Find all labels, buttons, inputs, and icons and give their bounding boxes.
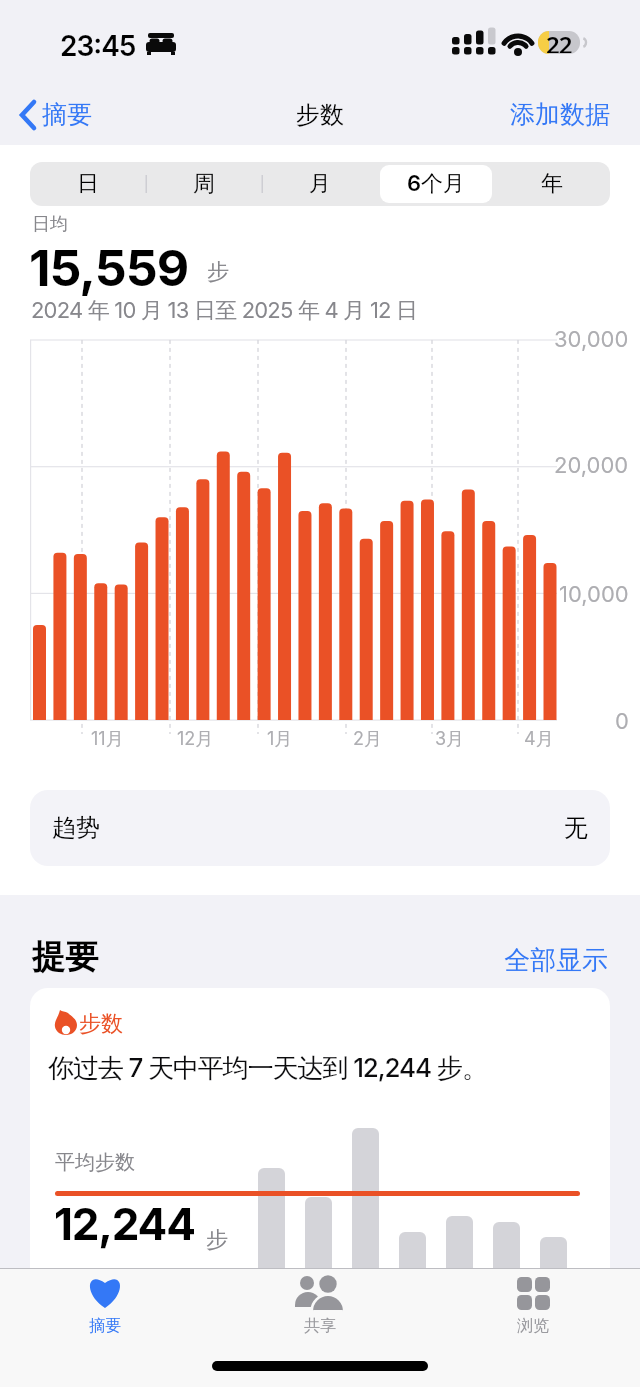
staticText: 11月 [91, 728, 124, 751]
staticText: 共享 [304, 1316, 336, 1336]
button[interactable]: 日 [30, 162, 146, 206]
staticText: 步数 [296, 100, 344, 130]
staticText: 20,000 [554, 452, 629, 479]
staticText: 15,559 [29, 238, 189, 298]
staticText: 平均步数 [55, 1150, 135, 1175]
button[interactable]: 6个月 [378, 162, 494, 206]
staticText: 1月 [267, 728, 293, 751]
staticText: 无 [564, 813, 588, 843]
staticText: 摘要 [89, 1316, 121, 1336]
staticText: 2月 [353, 728, 382, 751]
staticText: 步 [207, 258, 229, 286]
button[interactable]: 周 [146, 162, 262, 206]
staticText: 添加数据 [510, 99, 610, 130]
staticText: 周 [193, 170, 215, 198]
staticText: 10,000 [559, 581, 629, 608]
staticText: 12,244 [54, 1197, 195, 1250]
staticText: 提要 [32, 936, 98, 978]
staticText: 摘要 [42, 99, 92, 130]
staticText: 步数 [79, 1010, 123, 1038]
staticText: 月 [309, 170, 331, 198]
staticText: 30,000 [554, 326, 629, 353]
button[interactable]: 摘要 [16, 96, 136, 136]
staticText: 23:45 [60, 29, 136, 63]
staticText: 趋势 [52, 813, 100, 843]
button[interactable]: 月 [262, 162, 378, 206]
staticText: 浏览 [517, 1316, 549, 1336]
button[interactable]: 摘要 [45, 1270, 165, 1350]
button[interactable]: 全部显示 [480, 944, 608, 978]
staticText: 3月 [435, 728, 465, 751]
button[interactable]: 趋势 [30, 790, 610, 866]
button[interactable]: 浏览 [473, 1270, 593, 1350]
staticText: 12月 [177, 728, 214, 751]
staticText: 你过去 7 天中平均一天达到 12,244 步。 [48, 1052, 487, 1085]
button[interactable]: 共享 [260, 1270, 380, 1350]
button[interactable]: 步数 [30, 988, 610, 1386]
staticText: 年 [541, 170, 563, 198]
staticText: 22 [546, 28, 572, 53]
staticText: 全部显示 [504, 944, 608, 977]
staticText: 6个月 [407, 170, 466, 198]
staticText: 步 [206, 1226, 228, 1254]
staticText: 日均 [32, 213, 68, 236]
staticText: 日 [77, 170, 99, 198]
staticText: 2024 年 10 月 13 日至 2025 年 4 月 12 日 [31, 297, 418, 325]
staticText: 0 [615, 708, 629, 735]
staticText: 4月 [524, 728, 554, 751]
button[interactable]: 添加数据 [490, 99, 610, 135]
button[interactable]: 年 [494, 162, 610, 206]
